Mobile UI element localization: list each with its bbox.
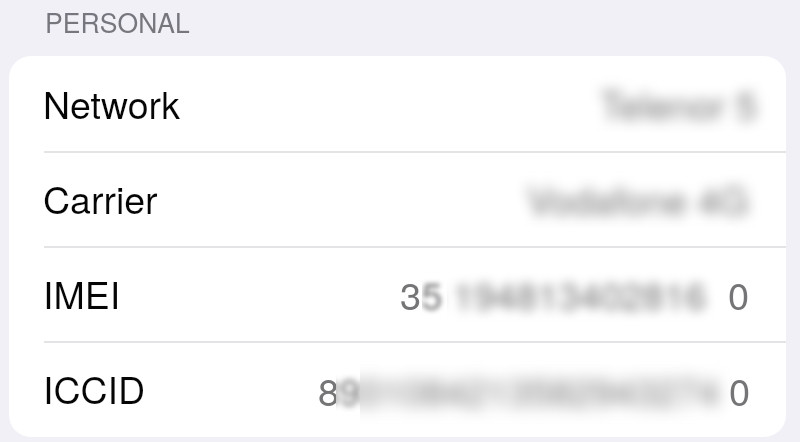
- staticText: Telenor 5: [600, 76, 757, 130]
- staticText: Carrier: [43, 171, 158, 225]
- staticText: 0: [729, 362, 751, 416]
- staticText: 8931084213582943274: [318, 362, 720, 416]
- staticText: 0: [728, 266, 750, 320]
- button[interactable]: Carrier: [9, 151, 786, 246]
- staticText: Vodafone 4G: [527, 171, 749, 225]
- button[interactable]: IMEI: [9, 246, 786, 341]
- staticText: 35 194813402816: [400, 266, 707, 320]
- staticText: 8931084213582943274: [318, 362, 720, 416]
- staticText: 8931084213582943274: [318, 362, 720, 416]
- staticText: Telenor 5: [600, 76, 757, 130]
- button[interactable]: Network: [9, 56, 786, 151]
- staticText: 8931084213582943274: [318, 362, 720, 416]
- staticText: Telenor 5: [600, 76, 757, 130]
- button[interactable]: ICCID: [9, 341, 786, 436]
- staticText: 35 194813402816: [400, 266, 707, 320]
- staticText: PERSONAL: [45, 3, 190, 41]
- staticText: IMEI: [43, 266, 121, 320]
- staticText: Vodafone 4G: [527, 171, 749, 225]
- staticText: 35 194813402816: [400, 266, 707, 320]
- staticText: ICCID: [43, 361, 146, 415]
- staticText: 35 194813402816: [400, 266, 707, 320]
- staticText: Network: [43, 76, 180, 130]
